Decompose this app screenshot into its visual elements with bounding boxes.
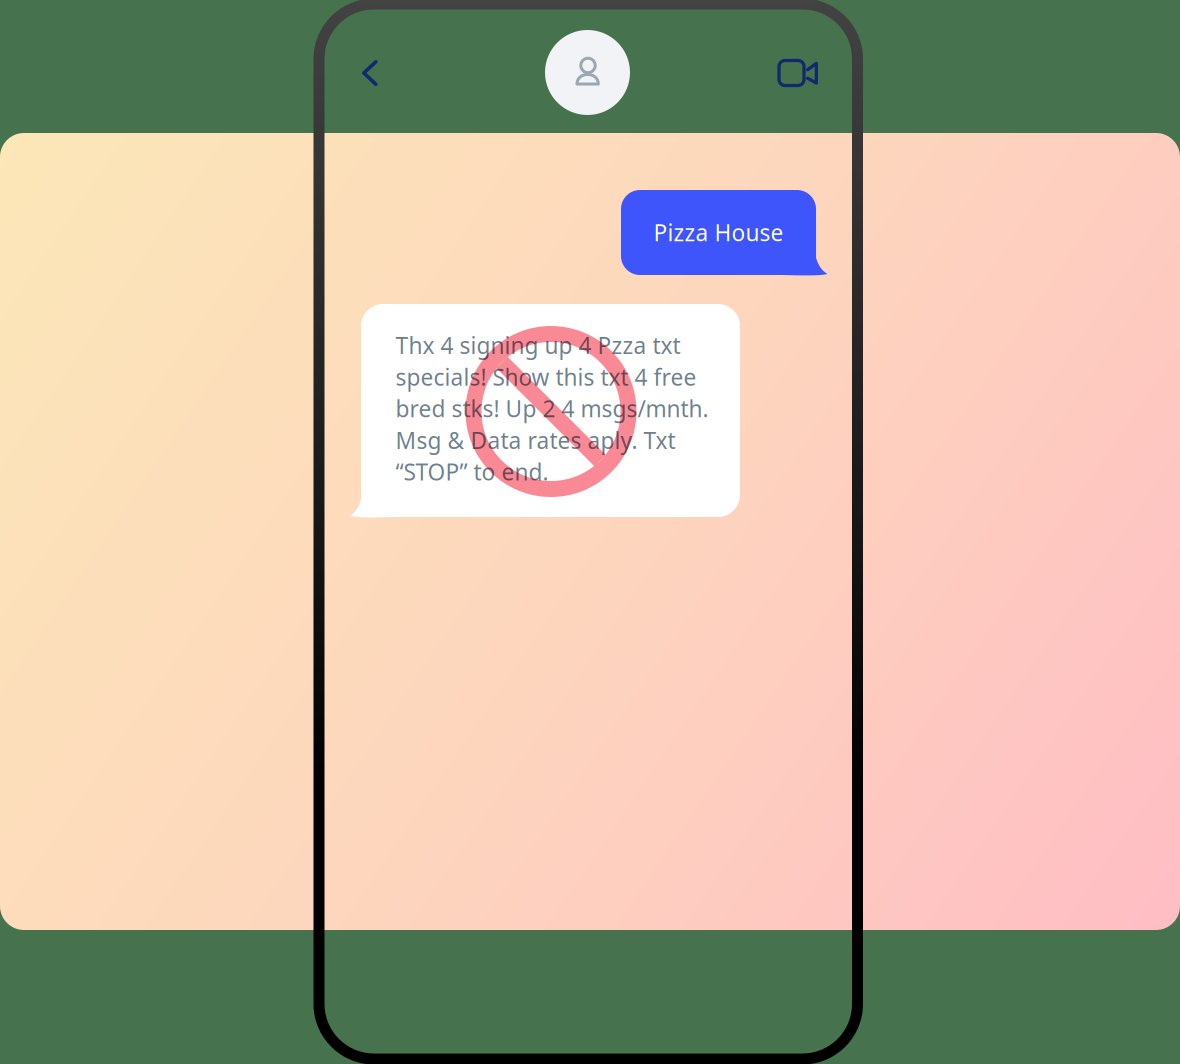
- button[interactable]: Video call: [771, 46, 825, 100]
- button[interactable]: Pizza House: [621, 190, 816, 275]
- staticText: Pizza House: [653, 217, 783, 247]
- staticText: Thx 4 signing up 4 Pzza txt specials! Sh…: [395, 330, 708, 487]
- button[interactable]: Contact profile: [545, 30, 630, 115]
- button[interactable]: Back: [343, 46, 397, 100]
